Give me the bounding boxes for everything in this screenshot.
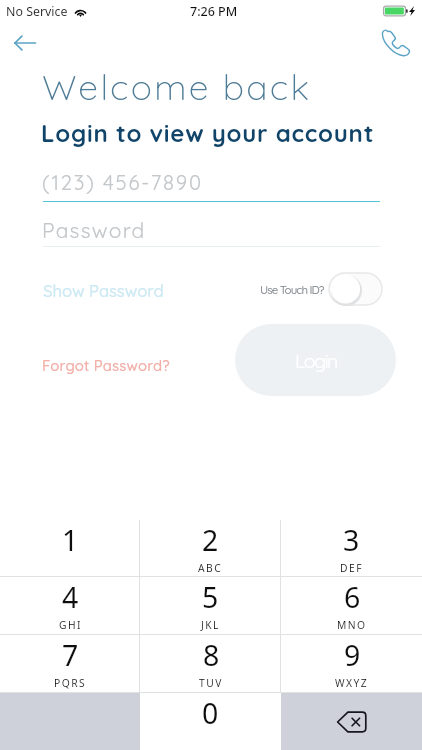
staticText: 7:26 PM <box>190 3 238 20</box>
staticText: GHI <box>59 618 82 632</box>
staticText: Use Touch ID? <box>260 282 324 296</box>
staticText: Login <box>295 348 337 372</box>
button[interactable]: 8 <box>140 635 281 692</box>
staticText: MNO <box>337 618 367 632</box>
staticText: 4 <box>62 578 79 617</box>
staticText: 1 <box>62 521 79 560</box>
staticText: PQRS <box>54 676 87 690</box>
staticText: 5 <box>202 578 219 617</box>
button[interactable]: 9 <box>281 635 422 692</box>
staticText: Welcome back <box>42 64 312 108</box>
button[interactable]: 4 <box>0 577 140 634</box>
staticText: 2 <box>202 521 219 560</box>
staticText: DEF <box>340 561 363 575</box>
staticText: 3 <box>343 521 360 560</box>
button[interactable]: Delete <box>281 693 422 750</box>
staticText: Password <box>42 217 146 243</box>
staticText: Login to view your account <box>41 118 375 148</box>
staticText: 0 <box>202 694 219 733</box>
button[interactable]: 6 <box>281 577 422 634</box>
button[interactable]: 2 <box>140 520 281 576</box>
staticText: 6 <box>344 578 361 617</box>
button[interactable]: 7 <box>0 635 140 692</box>
staticText: Show Password <box>43 280 164 301</box>
button[interactable]: 3 <box>281 520 422 576</box>
staticText: Forgot Password? <box>42 356 170 375</box>
button[interactable]: Show Password <box>37 275 170 306</box>
button[interactable]: Back <box>4 23 46 63</box>
button[interactable]: 1 <box>0 520 140 576</box>
staticText: TUV <box>199 676 223 690</box>
button[interactable]: 5 <box>140 577 281 634</box>
button[interactable]: Forgot Password? <box>36 350 176 381</box>
staticText: (123) 456-7890 <box>42 170 203 195</box>
staticText: 7 <box>62 636 79 675</box>
staticText: 8 <box>203 636 220 675</box>
staticText: 9 <box>344 636 361 675</box>
staticText: WXYZ <box>335 676 369 690</box>
staticText: ABC <box>198 561 223 575</box>
button[interactable]: Use Touch ID toggle <box>329 273 382 305</box>
button[interactable]: Login <box>235 324 396 396</box>
button[interactable]: 0 <box>140 693 281 750</box>
staticText: No Service <box>6 3 68 20</box>
button[interactable]: Call support <box>376 24 416 64</box>
staticText: JKL <box>201 618 220 632</box>
